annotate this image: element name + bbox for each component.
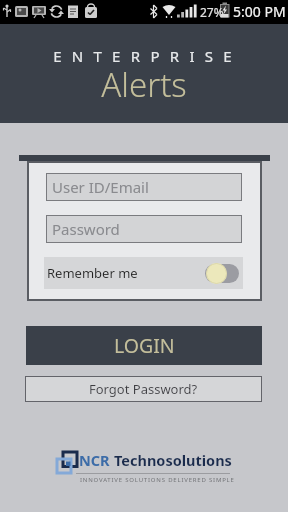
staticText: User ID/Email	[52, 177, 149, 197]
staticText: 27%	[200, 4, 224, 20]
button[interactable]: Remember me	[44, 257, 243, 289]
staticText: E N T E R P R I S E	[0, 46, 288, 66]
staticText: Forgot Password?	[89, 380, 198, 398]
staticText: Technosolutions	[114, 450, 232, 470]
staticText: 5:00 PM	[233, 2, 286, 21]
staticText: INNOVATIVE SOLUTIONS DELIVERED SIMPLE	[80, 476, 235, 484]
staticText: NCR	[79, 450, 110, 470]
staticText: Alerts	[0, 62, 288, 107]
button[interactable]: Forgot Password?	[25, 376, 262, 402]
staticText: Remember me	[47, 264, 138, 282]
button[interactable]: LOGIN	[26, 326, 262, 365]
staticText: Password	[52, 219, 120, 239]
button[interactable]: User ID/Email	[46, 173, 242, 201]
staticText: LOGIN	[114, 332, 175, 359]
button[interactable]: Password	[46, 215, 242, 243]
